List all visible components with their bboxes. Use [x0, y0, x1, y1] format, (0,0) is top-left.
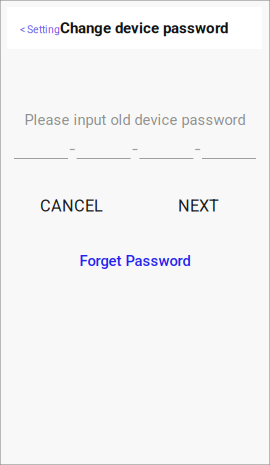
button[interactable]: NEXT	[135, 190, 262, 222]
staticText: NEXT	[178, 196, 219, 216]
button[interactable]: Forget Password	[0, 250, 270, 272]
staticText: CANCEL	[40, 196, 103, 216]
staticText: Forget Password	[79, 252, 190, 270]
staticText: <	[20, 24, 25, 36]
staticText: Change device password	[60, 19, 228, 37]
staticText: Setting	[27, 24, 60, 36]
button[interactable]: CANCEL	[8, 190, 135, 222]
button[interactable]: <	[0, 24, 60, 37]
staticText: Please input old device password	[24, 111, 245, 129]
